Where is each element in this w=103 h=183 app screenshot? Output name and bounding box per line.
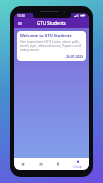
button[interactable]: Open navigation menu — [16, 20, 23, 27]
staticText: Circular — [73, 165, 83, 169]
button[interactable]: Group — [32, 158, 49, 170]
staticText: Welcome to GTU Students — [20, 33, 72, 38]
staticText: GTU Students — [37, 20, 66, 26]
staticText: 10:30 — [17, 14, 26, 18]
staticText: Get important GTU Links, store pdfs, wor… — [20, 39, 83, 52]
button[interactable]: Welcome to GTU Students — [17, 31, 86, 61]
button[interactable]: Circular — [66, 158, 89, 170]
button[interactable]: Home — [14, 158, 32, 170]
button[interactable]: Material — [49, 158, 66, 170]
staticText: 26-01-2023 — [20, 55, 83, 59]
